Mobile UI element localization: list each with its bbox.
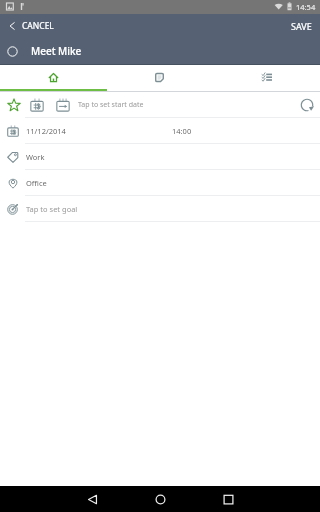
button[interactable]: 11/12/2014 [0,118,320,143]
staticText: Meet Mike [31,44,82,58]
button[interactable]: SAVE [281,14,320,38]
button[interactable]: Notes tab [106,65,213,89]
button[interactable]: Work [0,144,320,169]
button[interactable]: Checklist tab [213,65,320,89]
other: Repeat [300,98,314,112]
staticText: SAVE [291,20,312,32]
staticText: Office [26,178,47,188]
button[interactable]: Back [64,486,120,512]
staticText: 14:00 [172,126,192,136]
button[interactable]: Tap to set start date [0,92,320,117]
button[interactable]: Home [132,486,188,512]
button[interactable]: Details tab [0,65,106,89]
button[interactable]: CANCEL [0,14,62,38]
staticText: 14:54 [296,2,316,12]
staticText: 11/12/2014 [26,126,66,136]
button[interactable]: Tap to set goal [0,196,320,221]
button[interactable]: Office [0,170,320,195]
staticText: Tap to set start date [78,100,144,110]
staticText: Work [26,152,45,162]
button[interactable]: Recent apps [200,486,256,512]
staticText: Tap to set goal [26,204,78,214]
staticText: CANCEL [22,20,54,32]
button[interactable]: Mark complete [7,46,18,57]
